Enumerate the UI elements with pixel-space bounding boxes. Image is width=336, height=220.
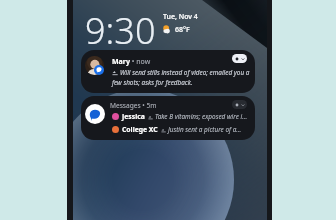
staticText: 9:30	[85, 6, 156, 55]
staticText: Justin sent a picture of a...	[168, 125, 242, 134]
staticText: Mary	[112, 57, 130, 67]
button[interactable]: Mary	[81, 50, 255, 93]
staticText: Jessica	[122, 112, 145, 121]
button[interactable]: Expand notification	[232, 54, 247, 63]
staticText: Will send stills instead of video; email…	[112, 68, 250, 87]
button[interactable]: Expand notification	[232, 100, 247, 109]
staticText: Take B vitamins; exposed wire i...	[155, 112, 248, 121]
staticText: 68°F	[175, 25, 190, 35]
staticText: College XC	[122, 125, 158, 134]
staticText: • now	[130, 57, 151, 67]
button[interactable]: Messages • 5m	[81, 96, 255, 140]
staticText: Tue, Nov 4	[163, 12, 198, 22]
staticText: Messages • 5m	[110, 101, 157, 110]
